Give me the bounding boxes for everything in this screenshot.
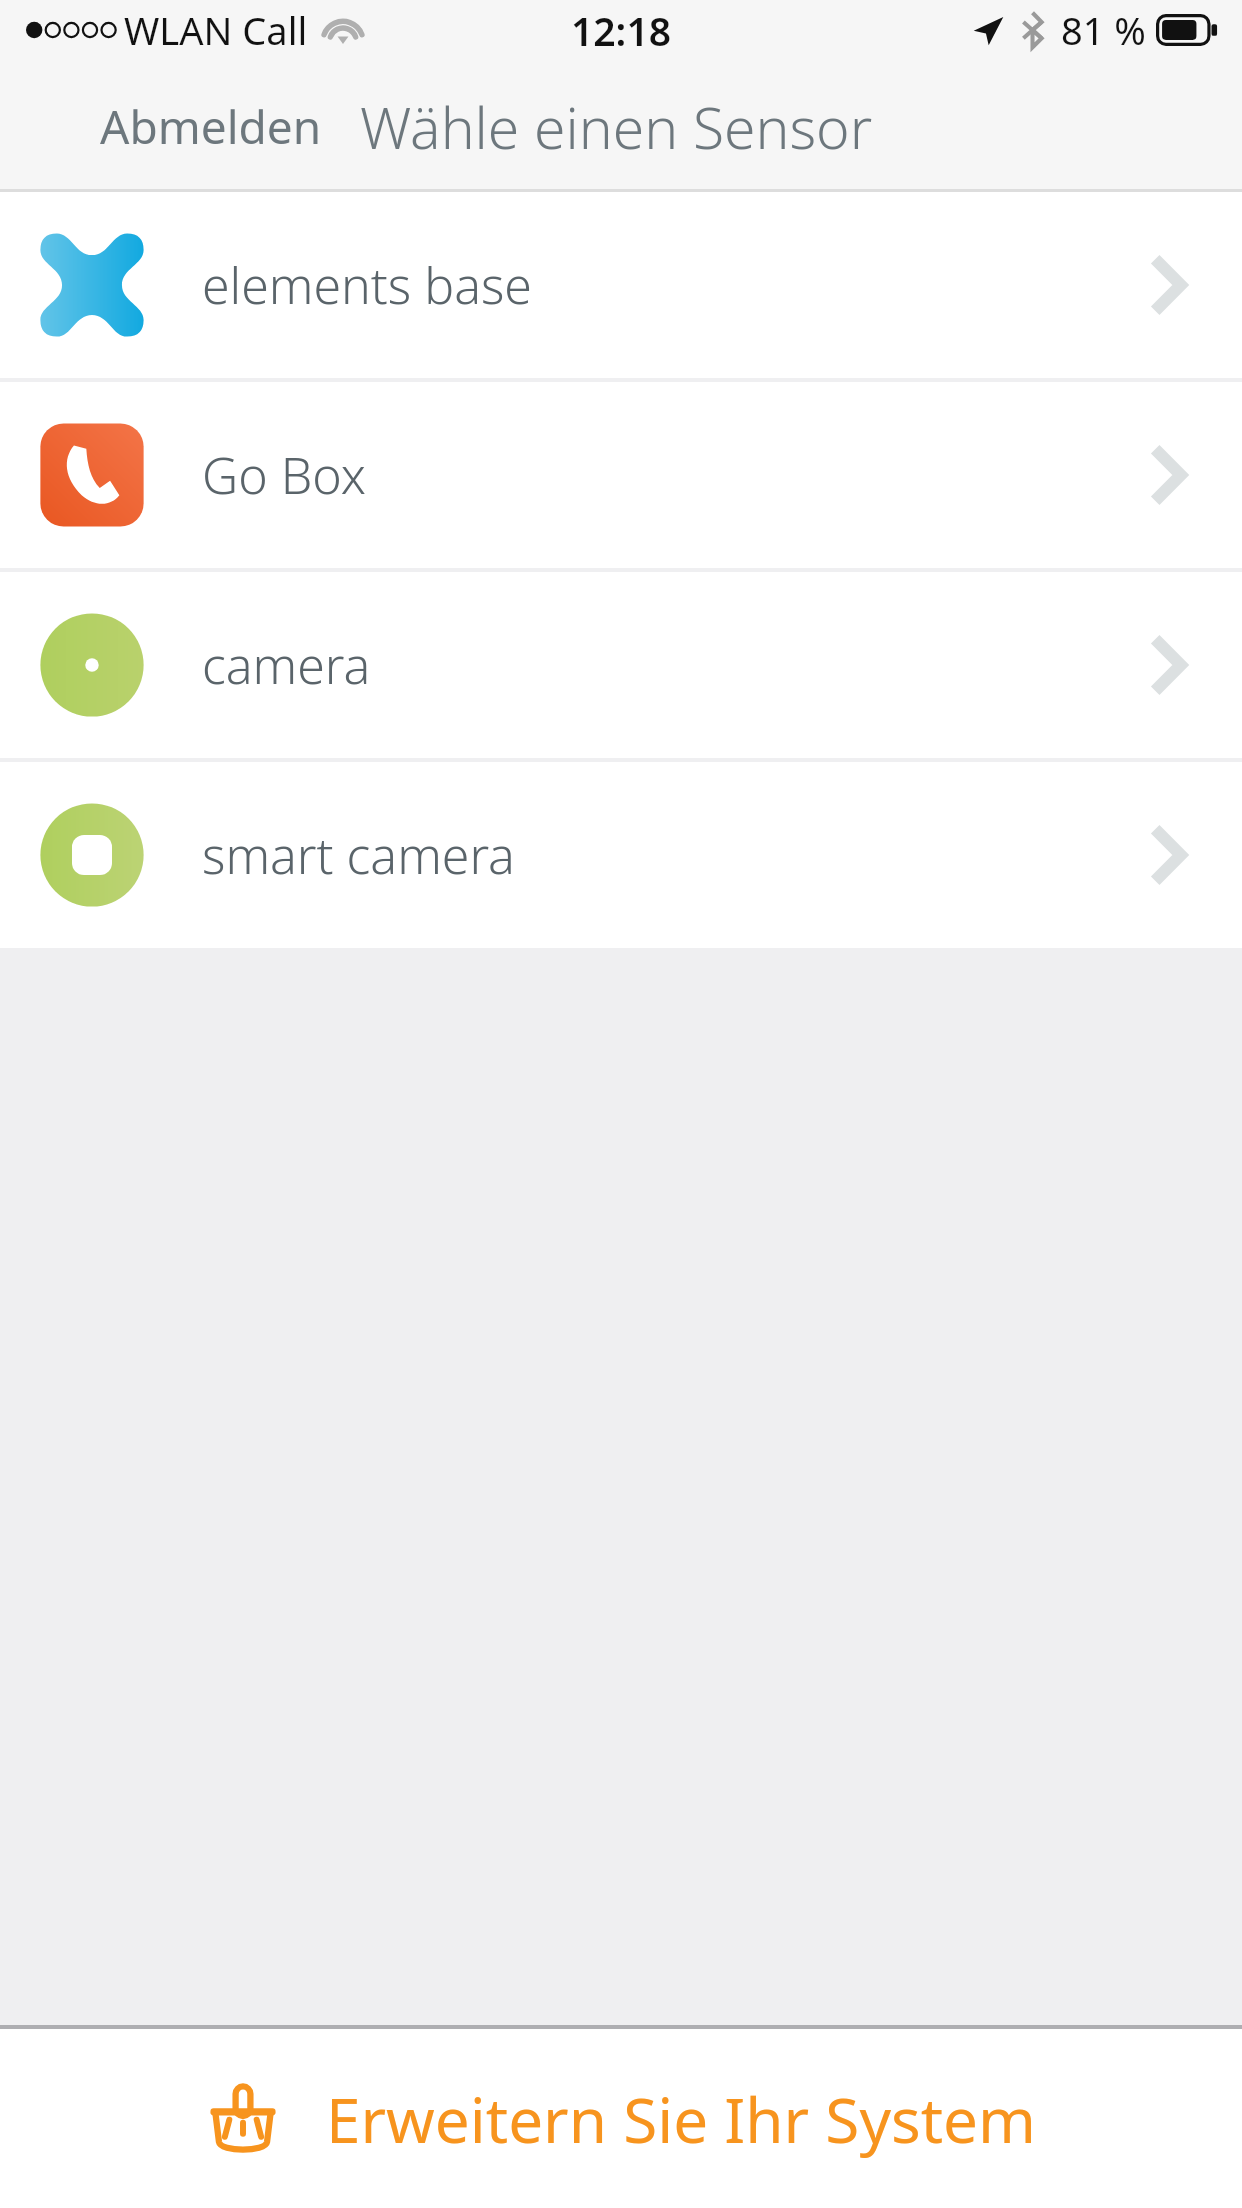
staticText: WLAN Call <box>124 4 308 56</box>
staticText: elements base <box>202 251 532 319</box>
button[interactable]: camera <box>0 572 1242 758</box>
staticText: Erweitern Sie Ihr System <box>326 2077 1037 2161</box>
staticText: Wähle einen Sensor <box>360 88 873 166</box>
staticText: smart camera <box>202 821 515 889</box>
button[interactable]: Go Box <box>0 382 1242 568</box>
button[interactable]: Erweitern Sie Ihr System <box>0 2029 1242 2208</box>
button[interactable]: smart camera <box>0 762 1242 948</box>
button[interactable]: Abmelden <box>0 81 332 172</box>
staticText: Go Box <box>202 441 366 509</box>
staticText: 81 % <box>1061 4 1146 56</box>
staticText: camera <box>202 631 371 699</box>
staticText: 12:18 <box>571 4 671 57</box>
staticText: Abmelden <box>100 95 322 158</box>
button[interactable]: elements base <box>0 192 1242 378</box>
